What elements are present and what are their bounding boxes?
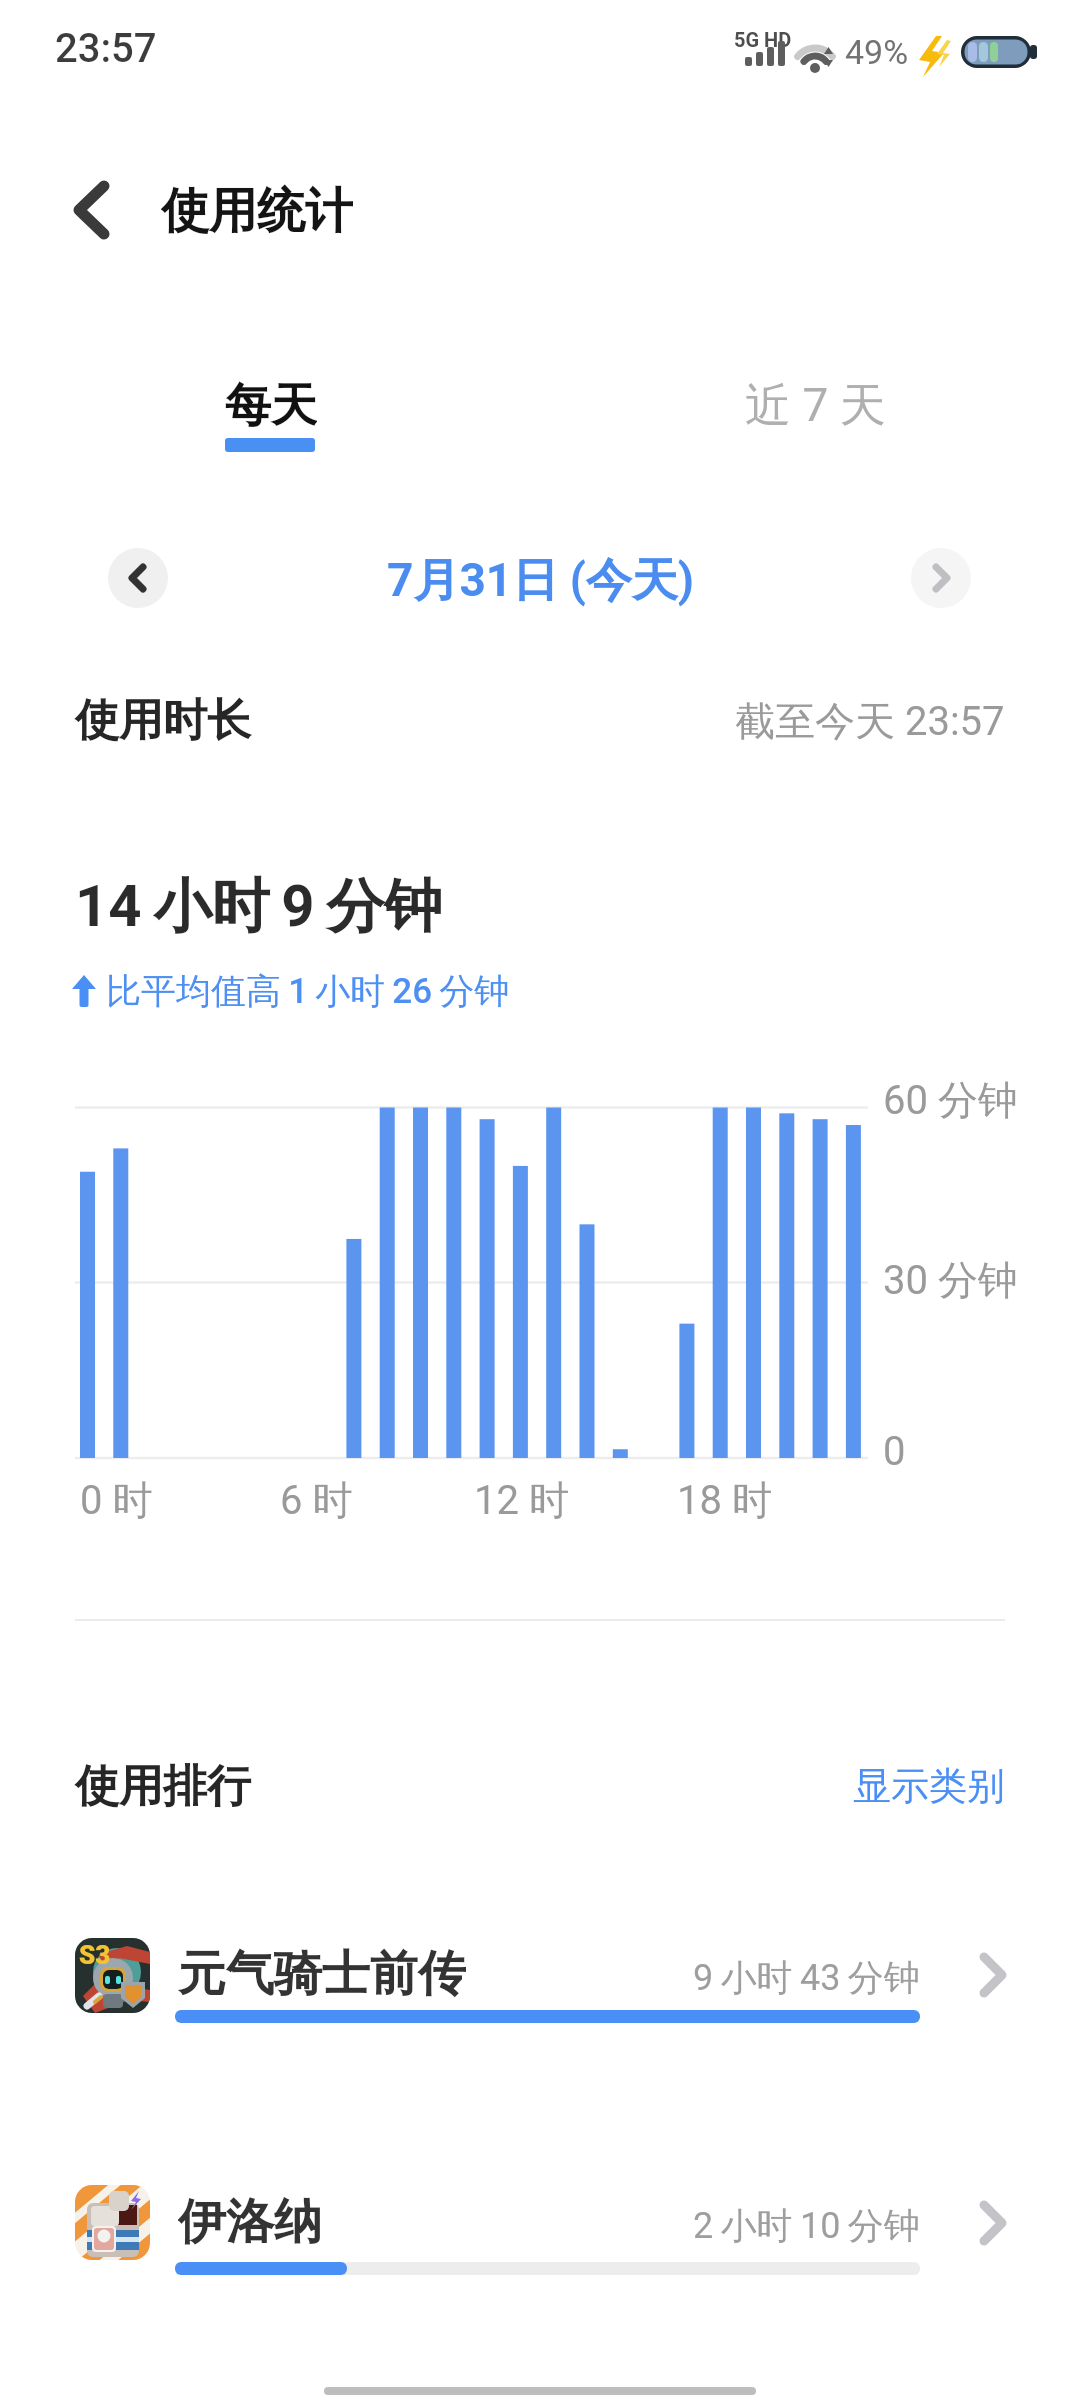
staticText: 6 时 [280, 1475, 353, 1525]
button[interactable] [40, 2168, 1040, 2288]
staticText: 每天 [225, 377, 317, 433]
staticText: 伊洛纳 [178, 2192, 322, 2248]
button[interactable] [911, 548, 971, 608]
staticText: 显示类别 [853, 1762, 1005, 1810]
staticText: 元气骑士前传 [178, 1944, 466, 2000]
staticText: 使用排行 [75, 1759, 251, 1814]
staticText: 30 分钟 [883, 1255, 1018, 1305]
staticText: 使用时长 [75, 693, 251, 748]
staticText: 14 小时 9 分钟 [75, 870, 443, 943]
staticText: 12 时 [474, 1475, 569, 1525]
staticText: 5G [734, 28, 760, 51]
staticText: 2 小时 10 分钟 [693, 2203, 920, 2248]
staticText: 9 小时 43 分钟 [693, 1955, 920, 2000]
button[interactable] [108, 548, 168, 608]
button[interactable]: 近 7 天 [720, 365, 905, 470]
staticText: 49% [845, 32, 909, 72]
staticText: 18 时 [677, 1475, 772, 1525]
staticText: 使用统计 [161, 181, 353, 237]
staticText: 23:57 [55, 25, 157, 72]
staticText: 比平均值高 1 小时 26 分钟 [106, 969, 510, 1013]
button[interactable] [55, 175, 125, 245]
button[interactable]: 7月31日 (今天) [330, 552, 750, 608]
button[interactable]: 每天 [195, 365, 345, 470]
staticText: 60 分钟 [883, 1075, 1018, 1125]
staticText: HD [764, 28, 792, 51]
staticText: 7月31日 (今天) [387, 552, 694, 608]
staticText: 截至今天 23:57 [735, 696, 1005, 746]
button[interactable]: 显示类别 [845, 1761, 1005, 1811]
staticText: S3 [79, 1940, 111, 1970]
staticText: 近 7 天 [745, 377, 886, 433]
staticText: 0 [883, 1428, 906, 1475]
button[interactable] [40, 1920, 1040, 2040]
staticText: 0 时 [80, 1475, 153, 1525]
